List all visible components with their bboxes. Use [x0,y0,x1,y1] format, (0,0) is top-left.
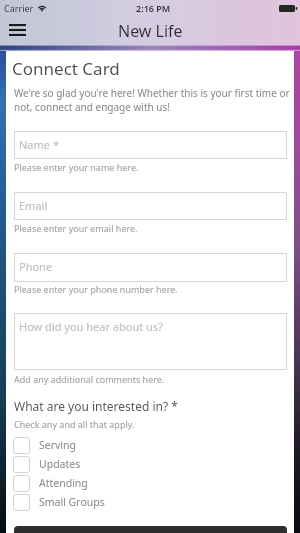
staticText: Name * [19,137,59,152]
button[interactable]: Updates [12,455,288,473]
button[interactable]: Email [14,192,287,220]
staticText: Check any and all that apply. [14,418,135,430]
staticText: Please enter your name here. [14,161,139,173]
button[interactable]: Phone [14,253,287,282]
staticText: 2:16 PM [136,2,171,14]
button[interactable]: Small Groups [12,493,288,511]
staticText: Updates [39,457,81,471]
staticText: Attending [39,476,88,490]
staticText: Phone [19,259,53,274]
button[interactable]: How did you hear about us? [14,313,287,370]
button[interactable]: Name * [14,131,287,159]
staticText: Email [19,198,48,213]
staticText: Carrier [4,2,34,14]
button[interactable]: Open navigation menu [4,19,30,41]
staticText: Connect Card [12,57,120,80]
staticText: Please enter your phone number here. [14,283,178,295]
staticText: We're so glad you're here! Whether this … [14,86,299,114]
staticText: Add any additional comments here. [14,373,165,385]
staticText: What are you interested in? * [14,398,178,414]
staticText: New Life [118,20,183,42]
button[interactable]: Serving [12,436,288,454]
staticText: Serving [39,438,77,452]
button[interactable] [14,526,287,533]
staticText: How did you hear about us? [19,319,163,334]
button[interactable]: Attending [12,474,288,492]
staticText: Small Groups [39,495,105,509]
staticText: Please enter your email here. [14,222,138,234]
